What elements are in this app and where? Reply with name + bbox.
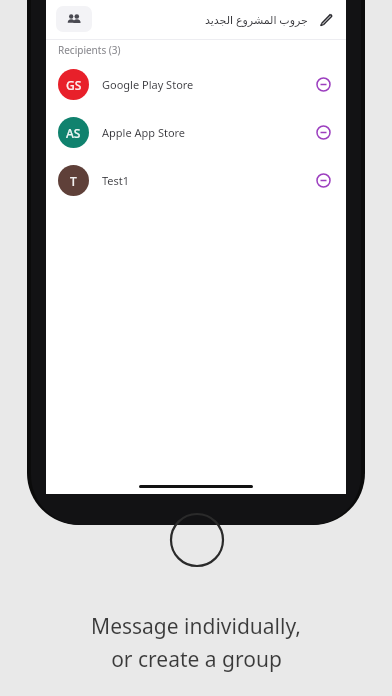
staticText: GS	[66, 77, 82, 93]
staticText: Apple App Store	[102, 125, 186, 140]
staticText: Google Play Store	[102, 77, 194, 92]
staticText: Message individually,	[91, 612, 301, 641]
button[interactable]: AS	[46, 108, 346, 156]
button[interactable]: Remove Google Play Store	[312, 73, 334, 95]
button[interactable]: GS	[46, 60, 346, 108]
button[interactable]: Contacts	[56, 6, 92, 32]
staticText: Recipients (3)	[58, 43, 121, 57]
button[interactable]: Remove Test1	[312, 169, 334, 191]
staticText: T	[70, 173, 77, 189]
button[interactable]: Edit group name	[316, 9, 336, 29]
staticText: Test1	[102, 173, 130, 188]
button[interactable]: T	[46, 156, 346, 204]
staticText: or create a group	[111, 645, 282, 674]
staticText: AS	[66, 125, 81, 141]
button[interactable]: Remove Apple App Store	[312, 121, 334, 143]
staticText: جروب المشروع الجديد	[205, 12, 308, 27]
